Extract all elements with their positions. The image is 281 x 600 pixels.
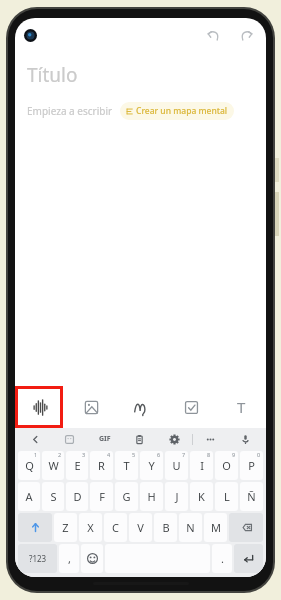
staticText: 0 — [257, 451, 261, 458]
staticText: Título — [27, 62, 78, 88]
button[interactable]: More options — [193, 428, 228, 450]
button[interactable]: Voice input — [228, 428, 263, 450]
button[interactable]: N — [179, 513, 202, 542]
button[interactable]: Emoji — [81, 544, 103, 573]
button[interactable]: M — [204, 513, 227, 542]
staticText: 3 — [82, 451, 86, 458]
staticText: C — [112, 520, 119, 535]
button[interactable]: B — [154, 513, 177, 542]
staticText: F — [99, 489, 105, 504]
button[interactable]: K — [190, 482, 213, 511]
staticText: 5 — [132, 451, 136, 458]
button[interactable]: Q — [18, 451, 40, 480]
staticText: S — [50, 489, 57, 504]
staticText: O — [222, 458, 231, 473]
staticText: A — [25, 489, 33, 504]
staticText: I — [200, 458, 204, 473]
staticText: Ñ — [247, 489, 256, 504]
staticText: 8 — [207, 451, 211, 458]
staticText: 4 — [107, 451, 111, 458]
button[interactable]: Z — [54, 513, 77, 542]
button[interactable]: Crear un mapa mental — [120, 102, 234, 120]
button[interactable]: Clipboard — [122, 428, 157, 450]
button[interactable]: Backspace — [229, 513, 263, 542]
staticText: 2 — [58, 451, 62, 458]
staticText: ?123 — [29, 553, 47, 564]
button[interactable]: E — [66, 451, 88, 480]
staticText: T — [123, 458, 130, 473]
staticText: GIF — [99, 434, 111, 444]
button[interactable]: Stickers — [52, 428, 87, 450]
button[interactable]: W — [42, 451, 64, 480]
button[interactable]: R — [90, 451, 113, 480]
staticText: K — [198, 489, 205, 504]
button[interactable]: Redo — [237, 25, 257, 45]
button[interactable]: , — [59, 544, 79, 573]
button[interactable]: Shift — [18, 513, 52, 542]
staticText: T — [237, 397, 246, 417]
staticText: 1 — [34, 451, 38, 458]
button[interactable]: Checklist — [166, 386, 216, 428]
staticText: M — [211, 520, 221, 535]
button[interactable]: Ñ — [240, 482, 263, 511]
staticText: 6 — [157, 451, 161, 458]
button[interactable]: Keyboard settings — [157, 428, 192, 450]
button[interactable]: P — [240, 451, 263, 480]
button[interactable]: X — [79, 513, 102, 542]
button[interactable]: GIF — [87, 428, 122, 450]
staticText: . — [221, 551, 224, 566]
staticText: R — [98, 458, 105, 473]
button[interactable]: D — [66, 482, 88, 511]
staticText: Empieza a escribir — [27, 104, 113, 118]
button[interactable]: . — [212, 544, 232, 573]
button[interactable]: J — [165, 482, 188, 511]
staticText: G — [122, 489, 131, 504]
staticText: E — [74, 458, 81, 473]
button[interactable]: O — [215, 451, 238, 480]
staticText: H — [147, 489, 156, 504]
button[interactable]: Y — [140, 451, 163, 480]
button[interactable]: L — [215, 482, 238, 511]
button[interactable]: Text format — [216, 386, 266, 428]
staticText: Z — [62, 520, 69, 535]
button[interactable]: Undo — [203, 25, 223, 45]
button[interactable]: C — [104, 513, 127, 542]
staticText: , — [68, 551, 71, 566]
staticText: B — [162, 520, 170, 535]
button[interactable]: I — [190, 451, 213, 480]
staticText: Crear un mapa mental — [136, 105, 228, 117]
staticText: U — [172, 458, 181, 473]
staticText: L — [224, 489, 230, 504]
button[interactable]: Back — [18, 428, 52, 450]
staticText: X — [87, 520, 94, 535]
button[interactable]: H — [140, 482, 163, 511]
button[interactable]: S — [42, 482, 64, 511]
staticText: J — [175, 489, 179, 504]
staticText: D — [73, 489, 82, 504]
button[interactable]: T — [115, 451, 138, 480]
staticText: P — [248, 458, 255, 473]
staticText: 7 — [182, 451, 186, 458]
button[interactable]: Draw — [116, 386, 166, 428]
button[interactable]: F — [90, 482, 113, 511]
staticText: 9 — [232, 451, 236, 458]
button[interactable]: G — [115, 482, 138, 511]
staticText: V — [137, 520, 144, 535]
staticText: N — [186, 520, 195, 535]
staticText: W — [48, 458, 59, 473]
button[interactable]: Image — [66, 386, 116, 428]
staticText: Y — [148, 458, 155, 473]
button[interactable]: U — [165, 451, 188, 480]
button[interactable]: Enter — [234, 544, 263, 573]
staticText: Q — [25, 458, 34, 473]
button[interactable]: A — [18, 482, 40, 511]
button[interactable]: Symbols — [18, 544, 57, 573]
button[interactable]: V — [129, 513, 152, 542]
button[interactable]: Audio — [15, 386, 66, 428]
